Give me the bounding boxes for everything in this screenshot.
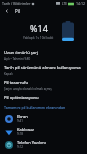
button[interactable]: Geri <box>4 8 10 14</box>
staticText: Açık • Tahmini %80 <box>4 57 31 61</box>
staticText: Şarjın uzayla olanaklı olmak açmış <box>4 87 52 91</box>
staticText: Pil <box>15 8 21 14</box>
button[interactable]: Pil <box>14 8 22 14</box>
button[interactable]: Pil optimizasyonu <box>0 93 87 103</box>
staticText: %14 <box>30 22 48 34</box>
button[interactable]: Pil tasarrufu <box>0 78 87 93</box>
staticText: Tamamını pil kullanımını ekranından <box>4 105 66 110</box>
staticText: Pil tasarrufu <box>4 80 29 86</box>
staticText: LTE <box>62 2 67 6</box>
staticText: %18 <box>17 132 23 136</box>
staticText: Tarih pil sürümünü almanı kullanıyorsa <box>4 65 81 71</box>
staticText: Tarih / Bildirimler <box>2 1 31 6</box>
staticText: Ekran <box>17 114 28 119</box>
staticText: Kablosuz <box>17 127 34 132</box>
staticText: Telefon Yazılımı <box>17 140 46 145</box>
button[interactable]: Uzun ömürlü şarj <box>0 48 87 63</box>
staticText: %41 <box>17 119 23 123</box>
button[interactable]: Kablosuz <box>0 125 87 138</box>
button[interactable]: Tarih pil sürümünü almanı kullanıyorsa <box>0 63 87 78</box>
button[interactable]: Telefon Yazılımı <box>0 138 87 151</box>
staticText: 14:12 <box>76 1 85 6</box>
button[interactable]: Ekran <box>0 112 87 125</box>
staticText: Kapalı <box>4 72 13 76</box>
staticText: %12 <box>17 145 23 149</box>
staticText: Pil optimizasyonu <box>4 95 39 101</box>
button[interactable]: Tamamını pil kullanımını ekranından <box>0 103 87 112</box>
staticText: Uzun ömürlü şarj <box>4 50 38 56</box>
staticText: Yaklaşık 1s 10d kaldı <box>23 36 54 40</box>
